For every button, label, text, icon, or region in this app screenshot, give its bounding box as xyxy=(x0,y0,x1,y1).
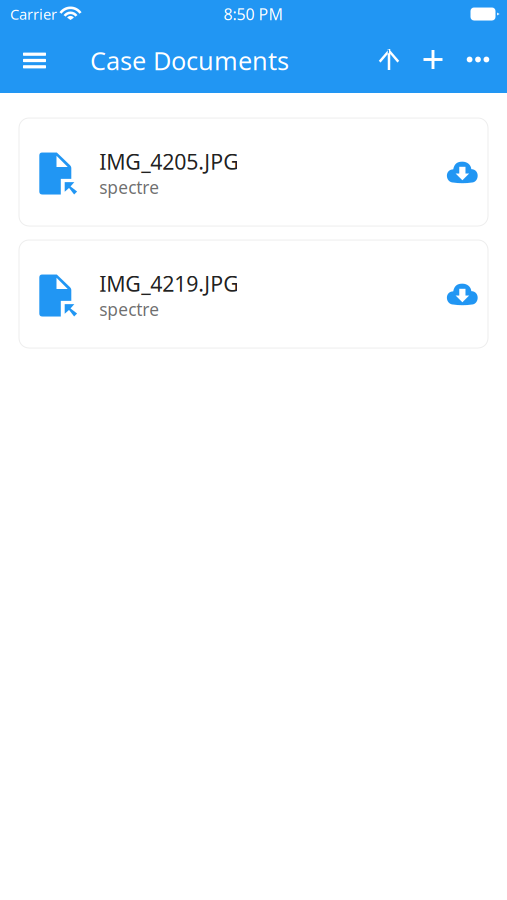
staticText: Carrier xyxy=(10,4,57,24)
button[interactable]: Add xyxy=(410,28,455,93)
button[interactable]: Menu xyxy=(14,28,55,93)
button[interactable]: Upload xyxy=(367,28,410,93)
button[interactable]: More options xyxy=(455,28,500,93)
staticText: IMG_4205.JPG xyxy=(99,147,239,176)
staticText: 8:50 PM xyxy=(223,3,283,25)
button[interactable]: IMG_4205.JPG xyxy=(19,118,488,226)
staticText: IMG_4219.JPG xyxy=(99,269,239,298)
button[interactable]: Case Documents xyxy=(55,28,289,93)
staticText: Case Documents xyxy=(90,44,289,77)
staticText: spectre xyxy=(99,298,159,321)
button[interactable]: IMG_4219.JPG xyxy=(19,240,488,348)
staticText: spectre xyxy=(99,176,159,199)
